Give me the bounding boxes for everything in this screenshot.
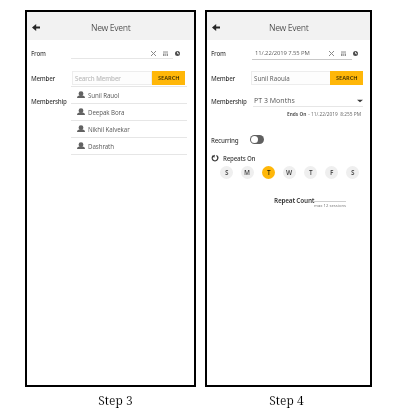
button[interactable]: Deepak Bora [71, 104, 187, 120]
staticText: Ends On [287, 111, 307, 118]
button[interactable]: Dashrath [71, 138, 187, 154]
staticText: From [211, 49, 226, 57]
button[interactable]: Back [210, 20, 222, 32]
button[interactable]: Recurring toggle [250, 135, 264, 144]
staticText: F [330, 168, 334, 177]
staticText: Deepak Bora [88, 108, 125, 116]
staticText: Sunil Raoula [254, 74, 290, 82]
staticText: SEARCH [158, 74, 180, 82]
staticText: From [31, 49, 46, 57]
button[interactable]: Pick date [339, 49, 348, 58]
staticText: T [267, 168, 271, 177]
staticText: Member [211, 74, 235, 82]
staticText: S [351, 168, 355, 177]
staticText: Repeats On [223, 154, 256, 162]
staticText: Membership [211, 97, 247, 105]
staticText: T [309, 168, 313, 177]
button[interactable]: Sunil Rauol [71, 87, 187, 103]
button[interactable]: Nikhil Kalvekar [71, 121, 187, 137]
button[interactable]: F [325, 166, 338, 179]
button[interactable]: Pick date [161, 49, 170, 58]
staticText: Member [31, 74, 55, 82]
button[interactable]: Pick time [173, 49, 182, 58]
button[interactable]: SEARCH [330, 71, 363, 85]
button[interactable]: S [220, 166, 233, 179]
staticText: Dashrath [88, 142, 114, 150]
staticText: New Event [269, 22, 309, 34]
button[interactable]: SEARCH [152, 71, 185, 85]
staticText: Step 4 [203, 392, 370, 408]
staticText: 11/.22/2019 7.55 PM [255, 49, 310, 57]
staticText: S [225, 168, 229, 177]
button[interactable]: Clear date [149, 49, 158, 58]
button[interactable]: Sunil Raoula [251, 71, 331, 85]
staticText: Sunil Rauol [88, 91, 120, 99]
button[interactable]: T [304, 166, 317, 179]
button[interactable]: T [262, 166, 275, 179]
button[interactable]: M [241, 166, 254, 179]
button[interactable]: Search Member [72, 71, 152, 85]
staticText: Search Member [75, 74, 121, 82]
button[interactable]: Clear date [327, 49, 336, 58]
button[interactable]: W [283, 166, 296, 179]
staticText: Nikhil Kalvekar [88, 125, 130, 133]
staticText: Membership [31, 97, 67, 105]
button[interactable]: S [346, 166, 359, 179]
staticText: max 12 sessions [314, 203, 347, 209]
staticText: New Event [91, 22, 131, 34]
button[interactable]: Pick time [351, 49, 360, 58]
staticText: M [244, 168, 251, 177]
button[interactable]: PT 3 Months [254, 94, 363, 107]
staticText: PT 3 Months [254, 96, 295, 106]
staticText: Repeat Count [274, 196, 315, 205]
staticText: - 11/.22/2019 8:255 PM [307, 111, 362, 118]
button[interactable]: Back [30, 20, 42, 32]
staticText: SEARCH [336, 74, 358, 82]
staticText: Step 3 [30, 392, 201, 408]
staticText: W [286, 168, 293, 177]
staticText: Recurring [211, 136, 239, 144]
